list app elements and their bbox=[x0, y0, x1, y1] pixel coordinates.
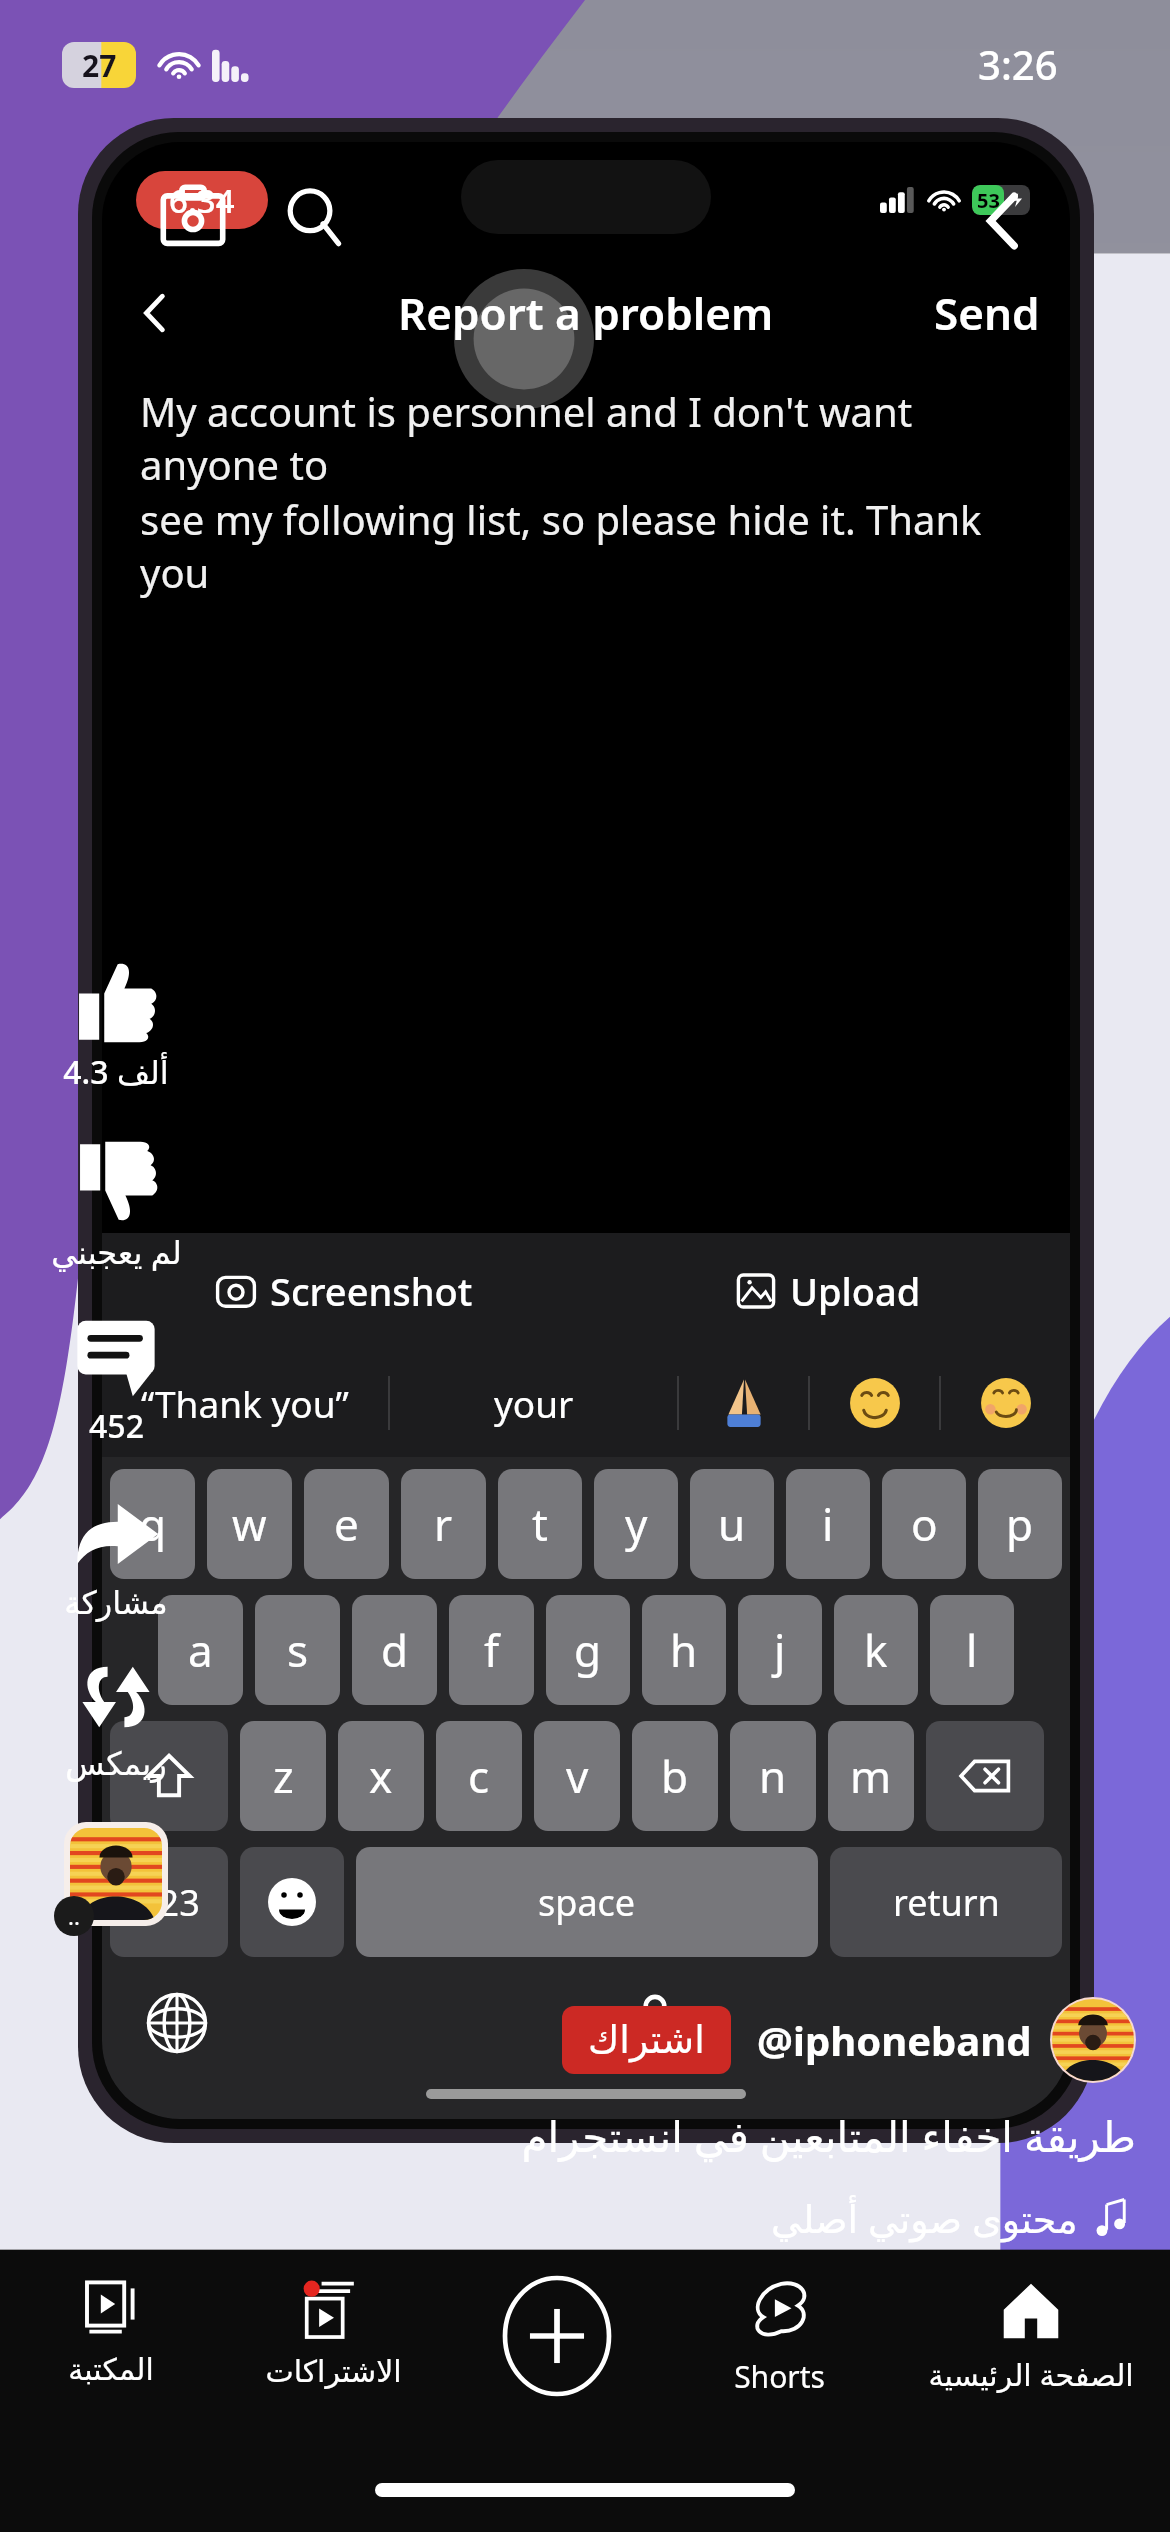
staticText: t bbox=[532, 1494, 548, 1554]
staticText: Upload bbox=[790, 1265, 921, 1317]
staticText: i bbox=[822, 1494, 834, 1554]
staticText: 6:34 bbox=[169, 178, 235, 223]
button[interactable]: your bbox=[390, 1349, 677, 1457]
staticText: n bbox=[759, 1746, 787, 1806]
button[interactable]: Shift bbox=[110, 1721, 228, 1831]
staticText: v bbox=[566, 1746, 589, 1806]
button[interactable]: Upload bbox=[586, 1233, 1070, 1349]
button[interactable]: j bbox=[738, 1595, 822, 1705]
staticText: d bbox=[381, 1620, 409, 1680]
staticText: h bbox=[670, 1620, 698, 1680]
staticText: Send bbox=[934, 283, 1040, 343]
staticText: s bbox=[287, 1620, 309, 1680]
staticText: x bbox=[369, 1746, 393, 1806]
button[interactable]: Share bbox=[64, 1490, 168, 1621]
staticText: محتوى صوتي أصلي bbox=[771, 2192, 1078, 2244]
staticText: My account is personnel and I don't want… bbox=[140, 384, 1036, 492]
button[interactable]: m bbox=[828, 1721, 914, 1831]
button[interactable]: محتوى صوتي أصلي bbox=[771, 2192, 1136, 2244]
button[interactable]: v bbox=[534, 1721, 620, 1831]
staticText: see my following list, so please hide it… bbox=[140, 492, 1036, 600]
staticText: الاشتراكات bbox=[265, 2354, 402, 2389]
button[interactable]: Comments bbox=[74, 1314, 158, 1448]
staticText: e bbox=[334, 1494, 359, 1554]
button[interactable]: @iphoneband bbox=[757, 1997, 1136, 2083]
staticText: لم يعجبني bbox=[51, 1230, 182, 1274]
button[interactable]: Create bbox=[445, 2252, 668, 2448]
staticText: 452 bbox=[89, 1404, 144, 1448]
button[interactable]: Remix bbox=[65, 1655, 167, 1782]
button[interactable]: l bbox=[930, 1595, 1014, 1705]
button[interactable]: h bbox=[642, 1595, 726, 1705]
staticText: Shorts bbox=[734, 2356, 825, 2397]
staticText: Screenshot bbox=[270, 1265, 473, 1317]
staticText: z bbox=[273, 1746, 294, 1806]
button[interactable] bbox=[810, 1349, 939, 1457]
button[interactable]: Like bbox=[63, 960, 169, 1094]
staticText: l bbox=[966, 1620, 978, 1680]
button[interactable]: Emoji bbox=[240, 1847, 344, 1957]
button[interactable]: e bbox=[304, 1469, 389, 1579]
other: Search bbox=[284, 186, 346, 248]
button[interactable]: طريقة اخفاء المتابعين في انستجرام bbox=[521, 2107, 1136, 2164]
button[interactable]: “Thank you” bbox=[102, 1349, 388, 1457]
staticText: ريمكس bbox=[65, 1745, 167, 1782]
button[interactable]: space bbox=[356, 1847, 818, 1957]
button[interactable]: المكتبة bbox=[0, 2252, 222, 2448]
button[interactable]: r bbox=[401, 1469, 486, 1579]
button[interactable]: 123 bbox=[110, 1847, 228, 1957]
staticText: y bbox=[625, 1494, 648, 1554]
button[interactable]: z bbox=[240, 1721, 326, 1831]
staticText: “Thank you” bbox=[141, 1378, 349, 1428]
button[interactable]: d bbox=[352, 1595, 437, 1705]
staticText: 53 bbox=[977, 187, 1000, 214]
other: Next bbox=[972, 190, 1034, 252]
button[interactable]: Dictation bbox=[616, 1984, 694, 2062]
button[interactable]: c bbox=[436, 1721, 522, 1831]
button[interactable]: الاشتراكات bbox=[222, 2252, 445, 2448]
button[interactable]: Backspace bbox=[926, 1721, 1044, 1831]
staticText: b bbox=[661, 1746, 689, 1806]
button[interactable]: Language bbox=[138, 1984, 216, 2062]
button[interactable]: return bbox=[830, 1847, 1062, 1957]
button[interactable]: b bbox=[632, 1721, 718, 1831]
button[interactable]: a bbox=[158, 1595, 243, 1705]
staticText: c bbox=[468, 1746, 490, 1806]
button[interactable]: u bbox=[690, 1469, 774, 1579]
staticText: مشاركة bbox=[64, 1584, 168, 1621]
button[interactable]: Sound bbox=[58, 1816, 174, 1932]
button[interactable]: الصفحة الرئيسية bbox=[891, 2252, 1170, 2448]
staticText: 123 bbox=[138, 1878, 200, 1927]
button[interactable]: n bbox=[730, 1721, 816, 1831]
button[interactable]: x bbox=[338, 1721, 424, 1831]
button[interactable]: f bbox=[449, 1595, 534, 1705]
staticText: w bbox=[232, 1494, 267, 1554]
staticText: m bbox=[850, 1746, 892, 1806]
staticText: الصفحة الرئيسية bbox=[928, 2354, 1134, 2395]
button[interactable]: s bbox=[255, 1595, 340, 1705]
button[interactable] bbox=[679, 1349, 808, 1457]
button[interactable]: Screenshot bbox=[102, 1233, 586, 1349]
button[interactable]: Send bbox=[934, 283, 1040, 343]
staticText: a bbox=[188, 1620, 213, 1680]
button[interactable]: p bbox=[978, 1469, 1062, 1579]
button[interactable]: Back bbox=[120, 277, 192, 349]
button[interactable]: w bbox=[207, 1469, 292, 1579]
button[interactable]: q bbox=[110, 1469, 195, 1579]
staticText: p bbox=[1006, 1494, 1034, 1554]
button[interactable]: Dislike bbox=[51, 1140, 182, 1274]
button[interactable]: k bbox=[834, 1595, 918, 1705]
button[interactable]: t bbox=[498, 1469, 582, 1579]
button[interactable]: y bbox=[594, 1469, 678, 1579]
button[interactable]: Shorts bbox=[668, 2252, 891, 2448]
staticText: 3:26 bbox=[978, 37, 1058, 91]
button[interactable]: o bbox=[882, 1469, 966, 1579]
staticText: k bbox=[864, 1620, 888, 1680]
staticText: اشتراك bbox=[588, 2018, 705, 2062]
button[interactable] bbox=[941, 1349, 1070, 1457]
button[interactable]: اشتراك bbox=[562, 2006, 731, 2074]
staticText: .. bbox=[68, 1901, 80, 1931]
button[interactable]: i bbox=[786, 1469, 870, 1579]
button[interactable]: g bbox=[546, 1595, 630, 1705]
staticText: 4.3 ألف bbox=[63, 1050, 169, 1094]
